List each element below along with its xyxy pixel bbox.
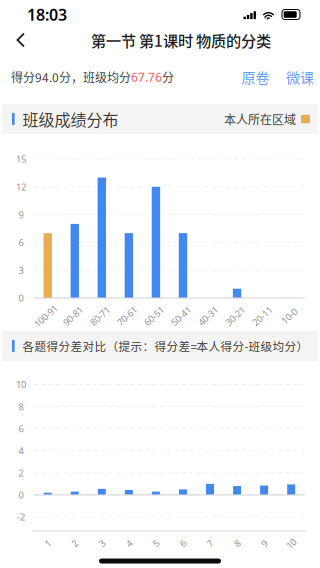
staticText: 9 xyxy=(262,537,267,550)
staticText: 4 xyxy=(126,537,131,550)
staticText: 6 xyxy=(180,537,185,550)
staticText: 40-31 xyxy=(196,310,219,322)
staticText: 70-61 xyxy=(115,310,138,322)
staticText: 分 xyxy=(162,68,174,86)
staticText: 2 xyxy=(18,467,23,479)
staticText: 各题得分差对比（提示：得分差=本人得分-班级均分） xyxy=(23,338,309,354)
staticText: 50-41 xyxy=(169,310,192,322)
staticText: 3 xyxy=(99,537,104,550)
staticText: 第一节 第1课时 物质的分类 xyxy=(91,29,271,51)
staticText: 6 xyxy=(18,236,23,249)
button[interactable]: 原卷 xyxy=(236,63,274,91)
staticText: 6 xyxy=(18,422,23,435)
staticText: 80-71 xyxy=(88,310,111,322)
staticText: 100-91 xyxy=(32,310,60,322)
staticText: 0 xyxy=(18,489,23,501)
staticText: 4 xyxy=(18,445,23,457)
staticText: 12 xyxy=(16,181,26,193)
staticText: 10 xyxy=(286,537,296,550)
staticText: 20-11 xyxy=(251,310,274,322)
staticText: 5 xyxy=(153,537,158,550)
staticText: 18:03 xyxy=(27,4,67,25)
staticText: 7 xyxy=(207,537,212,550)
staticText: 3 xyxy=(18,264,23,276)
staticText: 8 xyxy=(18,400,23,413)
staticText: -2 xyxy=(17,511,25,523)
staticText: 90-81 xyxy=(61,310,84,322)
staticText: 8 xyxy=(235,537,240,550)
staticText: 班级成绩分布 xyxy=(23,107,119,131)
staticText: 原卷 xyxy=(241,67,269,87)
staticText: 1 xyxy=(45,537,50,550)
staticText: 2 xyxy=(72,537,77,550)
staticText: 15 xyxy=(16,153,26,165)
staticText: 10-0 xyxy=(280,310,298,322)
button[interactable]: 微课 xyxy=(281,63,319,91)
staticText: 本人所在区域 xyxy=(224,110,296,128)
staticText: 67.76 xyxy=(131,69,162,85)
staticText: 0 xyxy=(18,292,23,304)
staticText: 60-51 xyxy=(142,310,165,322)
staticText: 9 xyxy=(18,208,23,221)
staticText: 得分94.0分，班级均分 xyxy=(11,68,131,86)
staticText: 10 xyxy=(16,378,26,391)
staticText: 微课 xyxy=(286,67,314,87)
staticText: 30-21 xyxy=(224,310,247,322)
button[interactable]: 返回 xyxy=(2,24,39,55)
